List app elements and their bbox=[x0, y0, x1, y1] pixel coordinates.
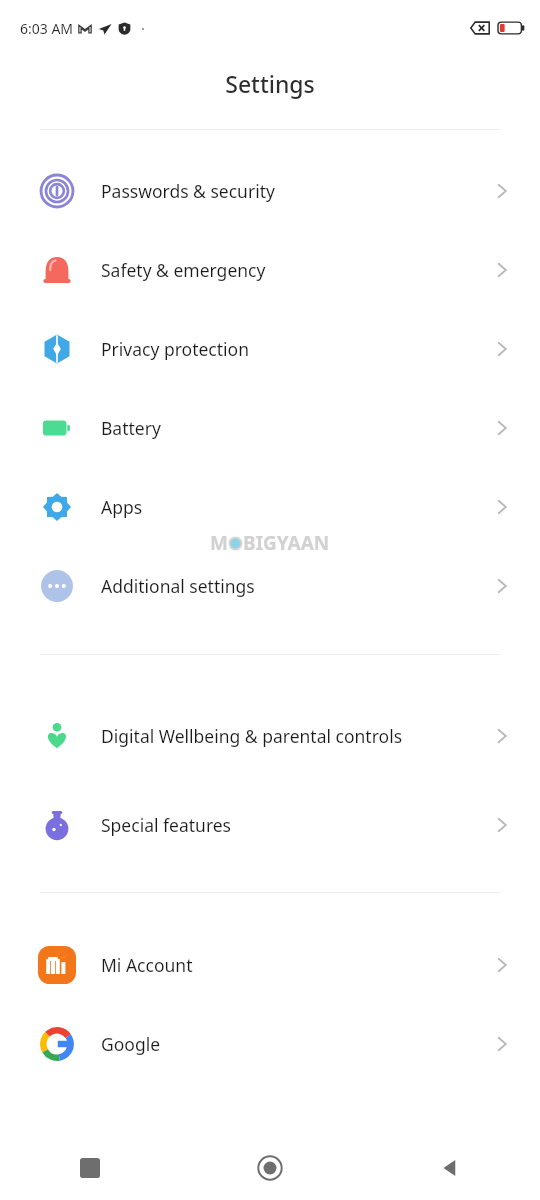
button[interactable]: Passwords & security bbox=[0, 151, 540, 230]
button[interactable]: Battery bbox=[0, 388, 540, 467]
staticText: Mi Account bbox=[101, 953, 428, 977]
staticText: Additional settings bbox=[101, 574, 428, 598]
staticText: Safety & emergency bbox=[101, 258, 428, 282]
staticText: Special features bbox=[101, 813, 428, 837]
staticText: Apps bbox=[101, 495, 428, 519]
staticText: M bbox=[210, 530, 228, 556]
button[interactable]: Privacy protection bbox=[0, 309, 540, 388]
staticText: Passwords & security bbox=[101, 179, 428, 203]
button[interactable]: Additional settings bbox=[0, 546, 540, 625]
button[interactable]: Apps bbox=[0, 467, 540, 546]
button[interactable]: Home bbox=[180, 1136, 360, 1200]
button[interactable]: Google bbox=[0, 1004, 540, 1083]
button[interactable]: Recents bbox=[0, 1136, 180, 1200]
button[interactable]: Mi Account bbox=[0, 925, 540, 1004]
staticText: Google bbox=[101, 1032, 428, 1056]
staticText: 6:03 AM bbox=[20, 19, 74, 38]
button[interactable]: Back bbox=[360, 1136, 540, 1200]
button[interactable]: Safety & emergency bbox=[0, 230, 540, 309]
button[interactable]: Special features bbox=[0, 785, 540, 864]
staticText: Digital Wellbeing & parental controls bbox=[101, 724, 428, 748]
staticText: Privacy protection bbox=[101, 337, 428, 361]
staticText: BIGYAAN bbox=[243, 530, 330, 556]
staticText: Battery bbox=[101, 416, 428, 440]
staticText: Settings bbox=[225, 68, 315, 99]
button[interactable]: Digital Wellbeing & parental controls bbox=[0, 686, 540, 785]
